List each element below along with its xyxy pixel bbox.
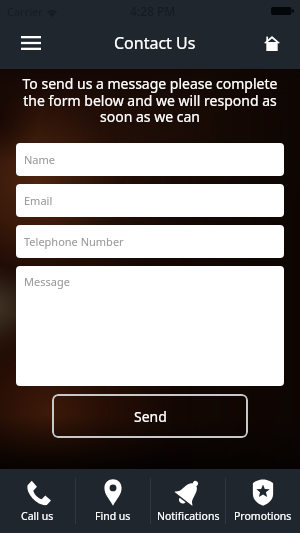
button[interactable]: Email <box>16 184 284 217</box>
staticText: Carrier <box>7 4 43 19</box>
staticText: Send <box>134 407 167 426</box>
button[interactable]: Message <box>16 266 284 386</box>
button[interactable]: Telephone Number <box>16 225 284 258</box>
staticText: Name <box>24 152 56 167</box>
button[interactable]: Send <box>52 394 248 438</box>
button[interactable]: Notifications <box>151 469 225 533</box>
staticText: To send us a message please complete the… <box>13 74 287 126</box>
staticText: Message <box>24 274 70 289</box>
button[interactable]: Call us <box>0 469 75 533</box>
button[interactable]: Promotions <box>226 469 300 533</box>
staticText: Notifications <box>157 509 220 523</box>
staticText: Promotions <box>234 509 292 523</box>
staticText: Telephone Number <box>24 234 124 249</box>
button[interactable]: Name <box>16 143 284 176</box>
button[interactable]: Menu <box>10 22 52 64</box>
staticText: Email <box>24 193 53 208</box>
staticText: Call us <box>21 509 54 523</box>
staticText: 4:28 PM <box>130 3 176 19</box>
button[interactable]: Find us <box>76 469 150 533</box>
button[interactable]: Home <box>251 22 293 64</box>
staticText: Find us <box>95 509 131 523</box>
staticText: Contact Us <box>114 32 196 54</box>
